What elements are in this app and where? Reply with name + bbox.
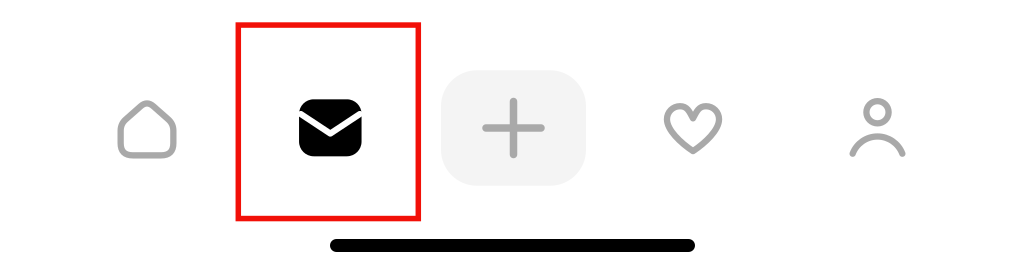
button[interactable]: Mail	[238, 25, 418, 218]
button[interactable]: Favorites	[601, 28, 784, 227]
button[interactable]: Profile	[786, 28, 969, 227]
button[interactable]: Create	[422, 28, 605, 227]
button[interactable]: Home	[55, 28, 238, 227]
